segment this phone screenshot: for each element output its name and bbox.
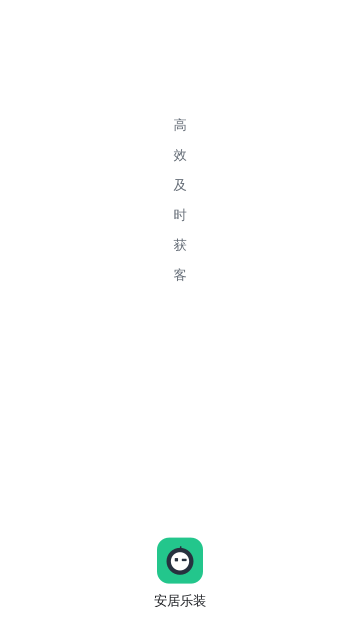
staticText: 效 [173,147,186,163]
staticText: 安居乐装 [154,593,206,609]
staticText: 时 [173,207,186,223]
staticText: 客 [173,267,186,283]
staticText: 高 [173,117,186,133]
staticText: 获 [173,237,186,253]
staticText: 及 [173,177,186,193]
